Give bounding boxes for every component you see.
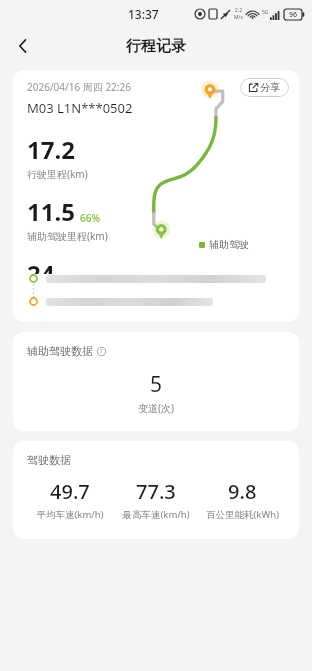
staticText: 77.3 [136, 478, 176, 505]
staticText: 96 [289, 10, 298, 20]
button[interactable]: Back [6, 29, 40, 63]
staticText: 13:37 [128, 6, 159, 22]
staticText: 5G [262, 9, 269, 16]
staticText: 2.2 [235, 7, 243, 14]
staticText: 百公里能耗(kWh) [206, 508, 279, 521]
staticText: M/s [234, 14, 243, 21]
button[interactable]: 分享 [240, 78, 289, 97]
staticText: 行程记录 [126, 37, 186, 56]
staticText: 分享 [260, 81, 280, 94]
button[interactable]: Info [96, 346, 106, 356]
staticText: 17.2 [27, 133, 75, 166]
staticText: 变道(次) [138, 401, 174, 415]
staticText: 平均车速(km/h) [36, 508, 104, 521]
staticText: 最高车速(km/h) [122, 508, 190, 521]
staticText: ? [100, 347, 103, 355]
staticText: 行驶里程(km) [27, 167, 88, 181]
staticText: 11.5 [27, 195, 75, 228]
staticText: 辅助驾驶 [209, 238, 249, 251]
staticText: 驾驶数据 [27, 453, 71, 467]
staticText: 2026/04/16 周四 22:26 [27, 80, 131, 94]
staticText: 24 [27, 257, 55, 274]
staticText: 辅助驾驶里程(km) [27, 229, 108, 243]
staticText: M03 L1N***0502 [27, 99, 133, 117]
staticText: 5 [150, 370, 163, 399]
staticText: 9.8 [228, 478, 257, 505]
staticText: 辅助驾驶数据 [27, 344, 93, 358]
staticText: 49.7 [50, 478, 90, 505]
staticText: 66% [80, 211, 100, 225]
